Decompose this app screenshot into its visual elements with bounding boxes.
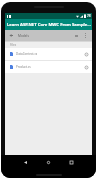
button[interactable]: Recent apps — [66, 157, 76, 167]
button[interactable]: DataContext.cs — [5, 48, 92, 60]
staticText: Learn ASP.NET Core MWC From Sample... — [7, 22, 91, 28]
staticText: 78 — [87, 14, 91, 18]
staticText: Product.cs — [16, 65, 31, 69]
button[interactable]: Home — [43, 157, 53, 167]
staticText: Models — [18, 34, 29, 38]
button[interactable]: Back — [20, 157, 30, 167]
button[interactable]: Toggle view — [71, 30, 81, 41]
button[interactable]: Product.cs — [5, 61, 92, 73]
button[interactable]: File info — [82, 62, 91, 73]
button[interactable]: File info — [82, 49, 91, 60]
staticText: DataContext.cs — [16, 52, 38, 56]
button[interactable]: More options — [81, 30, 89, 41]
staticText: Files — [10, 43, 17, 47]
button[interactable]: Navigate up — [5, 30, 17, 41]
